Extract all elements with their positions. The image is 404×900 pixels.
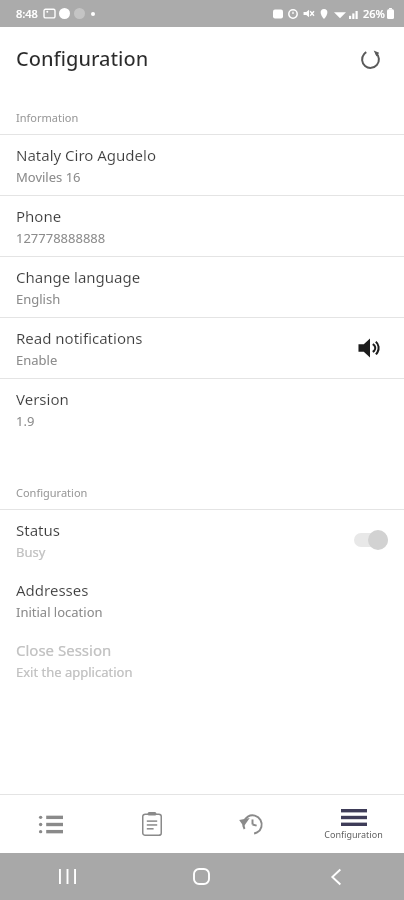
- button[interactable]: Addresses: [0, 570, 404, 630]
- button[interactable]: Refresh: [348, 37, 392, 81]
- button[interactable]: Phone: [0, 196, 404, 256]
- staticText: Nataly Ciro Agudelo: [16, 145, 156, 165]
- staticText: 8:48: [16, 6, 38, 21]
- button[interactable]: History: [202, 795, 303, 853]
- staticText: Moviles 16: [16, 168, 81, 186]
- button[interactable]: Busy toggle: [340, 524, 388, 556]
- staticText: Exit the application: [16, 663, 133, 681]
- button[interactable]: Read notifications: [352, 330, 388, 366]
- button[interactable]: Configuration: [303, 795, 404, 853]
- button[interactable]: Version: [0, 379, 404, 439]
- staticText: 127778888888: [16, 229, 106, 247]
- button[interactable]: Read notifications: [0, 318, 404, 378]
- staticText: Configuration: [16, 485, 88, 500]
- staticText: Status: [16, 520, 60, 540]
- button[interactable]: Status: [0, 510, 404, 570]
- button[interactable]: Orders: [101, 795, 202, 853]
- staticText: Close Session: [16, 640, 112, 660]
- staticText: 26%: [363, 6, 385, 21]
- staticText: Phone: [16, 206, 62, 226]
- staticText: Read notifications: [16, 328, 143, 348]
- staticText: Configuration: [16, 45, 149, 72]
- staticText: Change language: [16, 267, 141, 287]
- button[interactable]: Close Session: [0, 630, 404, 690]
- staticText: Initial location: [16, 603, 103, 621]
- button[interactable]: Nataly Ciro Agudelo: [0, 135, 404, 195]
- button[interactable]: List: [0, 795, 101, 853]
- staticText: Enable: [16, 351, 58, 369]
- staticText: Version: [16, 389, 69, 409]
- staticText: Addresses: [16, 580, 89, 600]
- button[interactable]: Change language: [0, 257, 404, 317]
- staticText: Busy: [16, 543, 46, 561]
- staticText: English: [16, 290, 61, 308]
- staticText: Information: [16, 110, 79, 125]
- staticText: Configuration: [324, 828, 383, 840]
- staticText: 1.9: [16, 412, 35, 430]
